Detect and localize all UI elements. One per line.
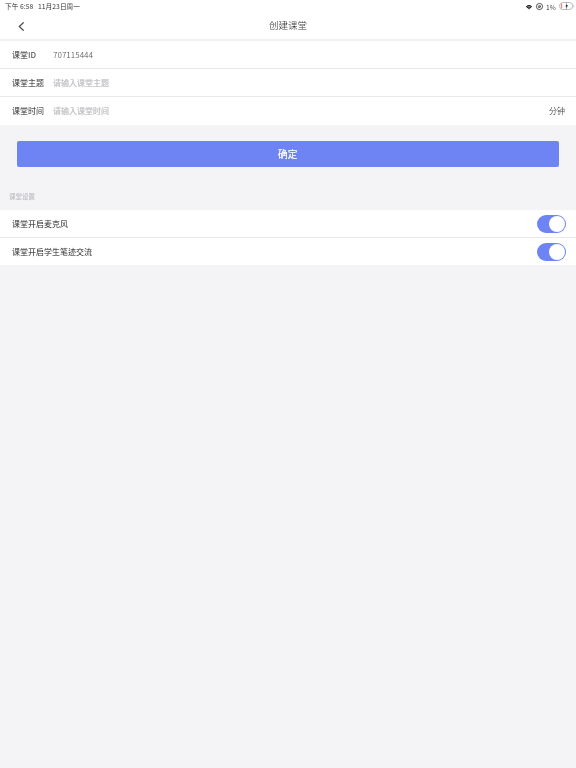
staticText: 请输入课堂时间 — [53, 105, 109, 117]
staticText: 创建课堂 — [269, 18, 308, 32]
staticText: 课堂开启麦克风 — [12, 218, 68, 230]
staticText: 课堂时间 — [12, 105, 44, 117]
staticText: 11月23日周一 — [38, 1, 80, 11]
button[interactable]: 课堂ID — [0, 41, 576, 68]
staticText: 确定 — [278, 147, 298, 161]
button[interactable]: Toggle 课堂开启学生笔迹交流 — [537, 243, 566, 261]
button[interactable]: 确定 — [17, 141, 559, 167]
staticText: 707115444 — [53, 49, 93, 61]
staticText: 课堂设置 — [9, 191, 35, 200]
button[interactable]: 课堂开启学生笔迹交流 — [0, 238, 576, 265]
staticText: 课堂主题 — [12, 77, 44, 89]
staticText: 下午 6:58 — [5, 1, 34, 11]
button[interactable]: Back — [10, 15, 32, 37]
button[interactable]: 课堂主题 — [0, 69, 576, 96]
staticText: 1% — [546, 2, 556, 11]
button[interactable]: 课堂时间 — [0, 97, 576, 125]
staticText: 课堂ID — [12, 49, 37, 61]
button[interactable]: 课堂开启麦克风 — [0, 210, 576, 237]
button[interactable]: Toggle 课堂开启麦克风 — [537, 215, 566, 233]
staticText: 分钟 — [549, 105, 565, 117]
staticText: 请输入课堂主题 — [53, 77, 109, 89]
staticText: 课堂开启学生笔迹交流 — [12, 246, 92, 258]
